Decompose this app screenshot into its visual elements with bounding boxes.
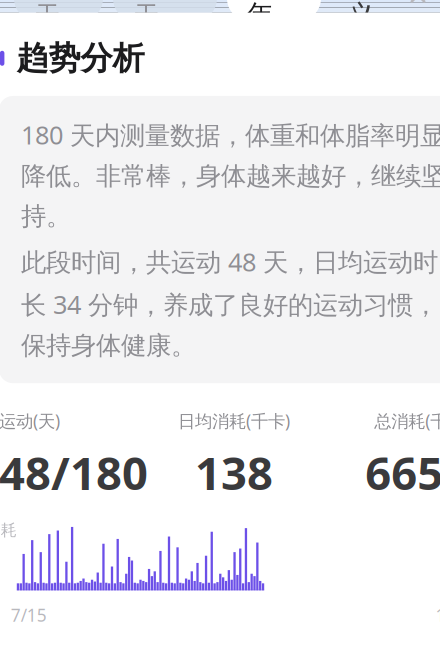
staticText: 日均消耗(千卡)	[178, 409, 290, 432]
staticText: 消耗	[0, 520, 17, 540]
staticText: 近 7 天	[34, 0, 83, 32]
staticText: 近 30 天	[133, 0, 197, 32]
staticText: 1/11	[435, 603, 440, 626]
staticText: 趋势分析	[16, 39, 144, 78]
staticText: 6655	[365, 442, 440, 502]
staticText: 此段时间，共运动 48 天，日均运动时长 34 分钟，养成了良好的运动习惯，保持…	[21, 245, 438, 361]
staticText: 138	[195, 442, 273, 502]
staticText: 48/180	[0, 442, 148, 502]
button[interactable]: 近半年	[227, 0, 321, 21]
staticText: 自定义	[347, 0, 403, 33]
staticText: 180 天内测量数据，体重和体脂率明显降低。非常棒，身体越来越好，继续坚持。	[21, 118, 440, 232]
button[interactable]: 自定义	[347, 0, 426, 39]
staticText: 7/15	[11, 603, 47, 626]
staticText: 总消耗(千卡)	[374, 409, 440, 432]
button[interactable]: 近 7 天	[14, 0, 103, 21]
staticText: 近半年	[247, 0, 301, 31]
staticText: 运动(天)	[0, 409, 60, 432]
button[interactable]: 近 30 天	[113, 0, 217, 21]
